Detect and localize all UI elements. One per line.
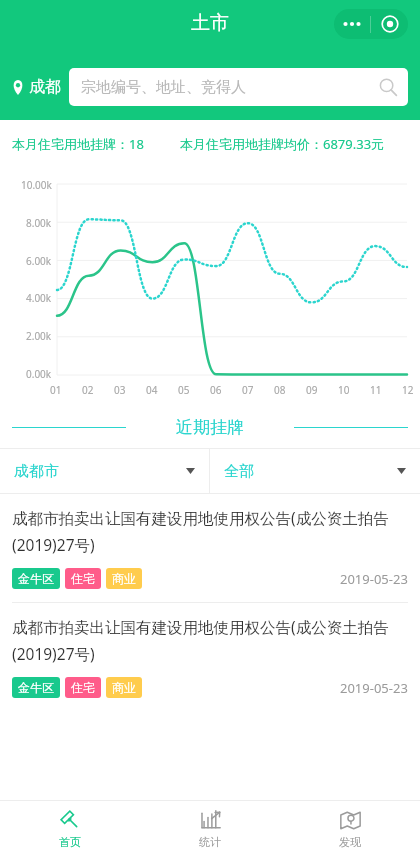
staticText: 住宅 (71, 680, 95, 695)
staticText: 03 (114, 383, 126, 397)
button[interactable]: 成都 (12, 77, 69, 97)
staticText: 本月住宅用地挂牌均价：6879.33元 (180, 135, 385, 153)
staticText: 全部 (224, 462, 397, 481)
button[interactable]: 宗地编号、地址、竞得人 (69, 68, 408, 106)
staticText: 08 (274, 383, 286, 397)
staticText: 成都市拍卖出让国有建设用地使用权公告(成公资土拍告(2019)27号) (12, 616, 408, 665)
staticText: 住宅 (71, 571, 95, 586)
button[interactable]: 首页 (0, 801, 140, 856)
staticText: 发现 (339, 835, 361, 849)
staticText: 10 (338, 383, 350, 397)
staticText: 06 (210, 383, 222, 397)
staticText: 成都市 (14, 462, 186, 481)
staticText: 01 (50, 383, 62, 397)
staticText: 4.00k (26, 291, 52, 305)
staticText: 本月住宅用地挂牌：18 (12, 135, 144, 153)
staticText: 6.00k (26, 254, 52, 268)
button[interactable]: Target (371, 9, 408, 39)
button[interactable]: More options (334, 9, 370, 39)
staticText: 0.00k (26, 367, 52, 381)
staticText: 09 (306, 383, 318, 397)
staticText: 金牛区 (18, 571, 54, 586)
staticText: 2.00k (26, 329, 52, 343)
staticText: 商业 (112, 571, 136, 586)
button[interactable]: 全部 (210, 449, 420, 493)
button[interactable]: 成都市拍卖出让国有建设用地使用权公告(成公资土拍告(2019)27号) (0, 603, 420, 711)
button[interactable]: 成都市 (0, 449, 209, 493)
staticText: 8.00k (26, 216, 52, 230)
staticText: 12 (402, 383, 414, 397)
staticText: 金牛区 (18, 680, 54, 695)
staticText: 成都市拍卖出让国有建设用地使用权公告(成公资土拍告(2019)27号) (12, 507, 408, 556)
staticText: 2019-05-23 (340, 570, 408, 588)
staticText: 04 (146, 383, 158, 397)
staticText: 10.00k (21, 178, 52, 192)
staticText: 成都 (29, 77, 61, 97)
staticText: 统计 (199, 835, 221, 849)
button[interactable]: 发现 (280, 801, 420, 856)
staticText: 近期挂牌 (176, 417, 244, 438)
staticText: 07 (242, 383, 254, 397)
button[interactable]: 统计 (140, 801, 280, 856)
staticText: 土市 (0, 11, 420, 35)
button[interactable]: 成都市拍卖出让国有建设用地使用权公告(成公资土拍告(2019)27号) (0, 494, 420, 602)
staticText: 商业 (112, 680, 136, 695)
staticText: 2019-05-23 (340, 679, 408, 697)
staticText: 宗地编号、地址、竞得人 (81, 78, 378, 97)
staticText: 05 (178, 383, 190, 397)
staticText: 02 (82, 383, 94, 397)
staticText: 首页 (59, 835, 81, 849)
staticText: 11 (370, 383, 382, 397)
